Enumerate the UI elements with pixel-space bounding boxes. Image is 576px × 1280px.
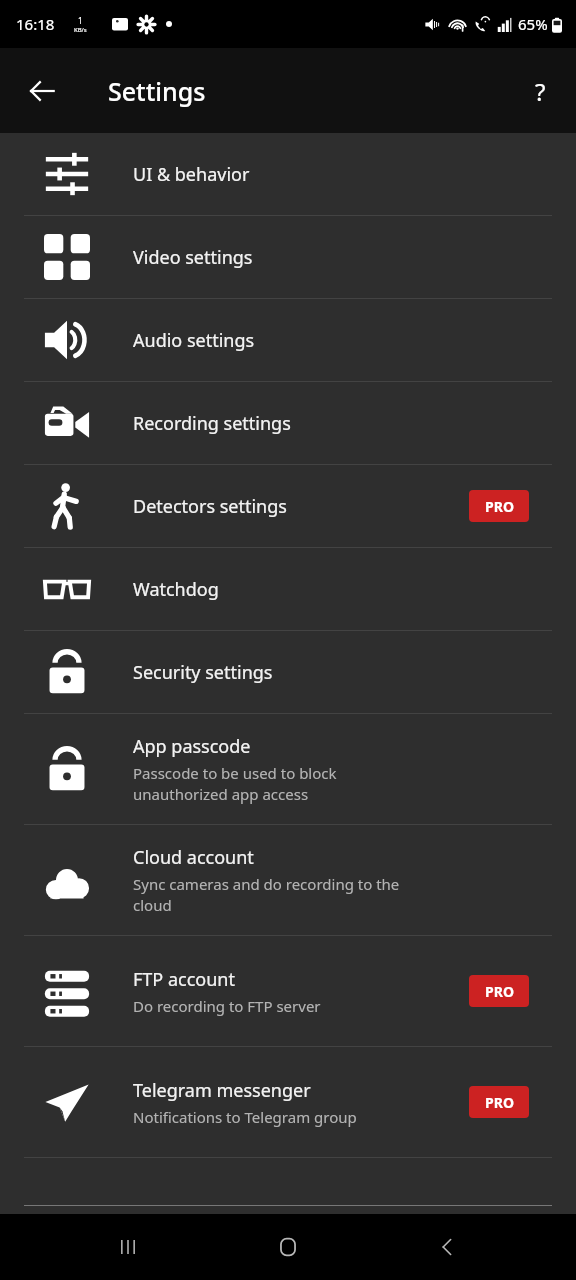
button[interactable]: Watchdog xyxy=(0,548,576,630)
button[interactable]: Telegram messenger xyxy=(0,1047,576,1157)
staticText: Audio settings xyxy=(133,328,255,353)
button[interactable]: Help xyxy=(512,63,568,119)
staticText: 1 xyxy=(78,15,83,26)
staticText: Video settings xyxy=(133,245,253,270)
staticText: FTP account xyxy=(133,967,235,992)
staticText: Detectors settings xyxy=(133,494,287,519)
staticText: Notifications to Telegram group xyxy=(133,1107,357,1127)
button[interactable]: App passcode xyxy=(0,714,576,824)
staticText: 65% xyxy=(518,14,548,34)
button[interactable]: Audio settings xyxy=(0,299,576,381)
button[interactable]: Security settings xyxy=(0,631,576,713)
staticText: Watchdog xyxy=(133,577,219,602)
button[interactable]: Back xyxy=(10,59,74,123)
button[interactable]: FTP account xyxy=(0,936,576,1046)
staticText: Do recording to FTP server xyxy=(133,996,321,1016)
staticText: Security settings xyxy=(133,660,273,685)
button[interactable]: Video settings xyxy=(0,216,576,298)
staticText: Settings xyxy=(108,74,206,108)
button[interactable]: Cloud account xyxy=(0,825,576,935)
button[interactable]: UI & behavior xyxy=(0,133,576,215)
staticText: PRO xyxy=(485,497,514,516)
staticText: Sync cameras and do recording to the clo… xyxy=(133,874,400,916)
button[interactable]: Recording settings xyxy=(0,382,576,464)
staticText: App passcode xyxy=(133,734,251,759)
button[interactable]: Recents xyxy=(96,1215,160,1279)
staticText: KB/s xyxy=(74,26,87,34)
staticText: PRO xyxy=(485,1093,514,1112)
staticText: Cloud account xyxy=(133,845,254,870)
staticText: ? xyxy=(535,75,546,108)
staticText: UI & behavior xyxy=(133,162,250,187)
staticText: 16:18 xyxy=(16,14,55,34)
button[interactable]: Back xyxy=(416,1215,480,1279)
staticText: Passcode to be used to block unauthorize… xyxy=(133,763,337,805)
staticText: Telegram messenger xyxy=(133,1078,311,1103)
button[interactable]: Detectors settings xyxy=(0,465,576,547)
staticText: PRO xyxy=(485,982,514,1001)
staticText: Recording settings xyxy=(133,411,291,436)
button[interactable]: Home xyxy=(256,1215,320,1279)
